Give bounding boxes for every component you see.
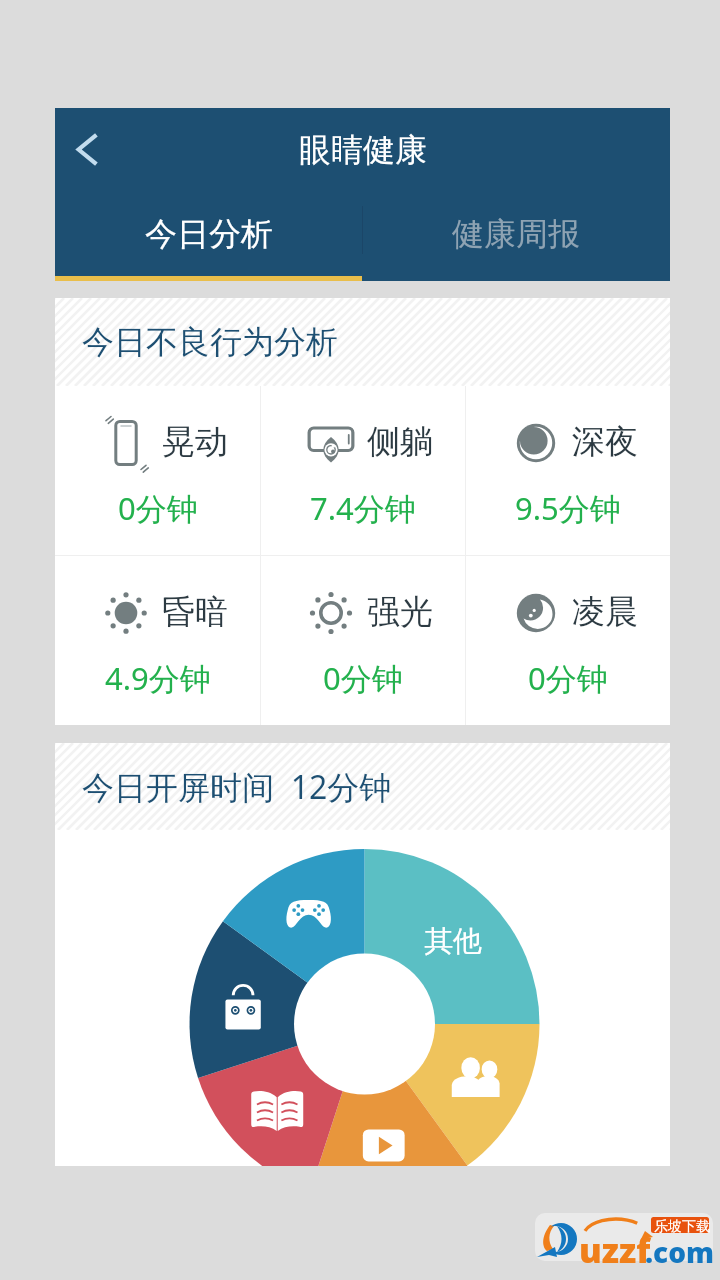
button[interactable]: 侧躺 xyxy=(261,386,465,555)
staticText: 强光 xyxy=(367,591,433,633)
staticText: uzzf xyxy=(579,1227,651,1273)
staticText: 今日分析 xyxy=(145,214,273,254)
staticText: 其他 xyxy=(424,923,482,960)
staticText: 乐坡下载 xyxy=(654,1218,710,1236)
staticText: 0分钟 xyxy=(118,487,198,529)
staticText: 侧躺 xyxy=(367,421,433,463)
button[interactable]: 凌晨 xyxy=(466,556,670,725)
button[interactable]: 健康周报 xyxy=(362,190,670,276)
staticText: 9.5分钟 xyxy=(515,487,621,529)
staticText: 4.9分钟 xyxy=(105,657,211,699)
staticText: 深夜 xyxy=(572,421,638,463)
staticText: 昏暗 xyxy=(162,591,228,633)
staticText: 今日开屏时间 12分钟 xyxy=(82,765,392,809)
button[interactable]: 昏暗 xyxy=(55,556,260,725)
button[interactable]: 晃动 xyxy=(55,386,260,555)
staticText: 眼睛健康 xyxy=(299,130,427,170)
button[interactable]: Back xyxy=(55,118,117,180)
staticText: 0分钟 xyxy=(323,657,403,699)
staticText: 健康周报 xyxy=(452,214,580,254)
staticText: 凌晨 xyxy=(572,591,638,633)
staticText: 晃动 xyxy=(162,421,228,463)
staticText: 0分钟 xyxy=(528,657,608,699)
staticText: .com xyxy=(645,1233,715,1271)
button[interactable]: 强光 xyxy=(261,556,465,725)
staticText: 7.4分钟 xyxy=(310,487,416,529)
staticText: 今日不良行为分析 xyxy=(82,322,338,362)
button[interactable]: 今日分析 xyxy=(55,190,362,276)
button[interactable]: 深夜 xyxy=(466,386,670,555)
